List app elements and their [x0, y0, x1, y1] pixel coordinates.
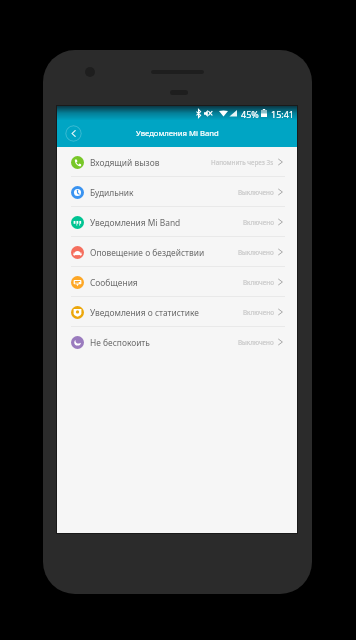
staticText: Включено [243, 278, 274, 287]
staticText: Напомнить через 3s [211, 158, 274, 167]
staticText: Не беспокоить [90, 337, 150, 348]
staticText: Оповещение о бездействии [90, 247, 205, 258]
staticText: Входящий вызов [90, 157, 160, 168]
staticText: Выключено [238, 338, 274, 347]
staticText: Выключено [238, 248, 274, 257]
staticText: Уведомления Mi Band [136, 128, 219, 138]
button[interactable]: Сообщения [57, 267, 297, 297]
button[interactable]: Уведомления Mi Band [57, 207, 297, 237]
staticText: Сообщения [90, 277, 138, 288]
button[interactable]: Оповещение о бездействии [57, 237, 297, 267]
button[interactable]: Не беспокоить [57, 327, 297, 357]
staticText: Включено [243, 308, 274, 317]
staticText: Будильник [90, 187, 134, 198]
staticText: Уведомления о статистике [90, 307, 199, 318]
button[interactable]: Back [65, 125, 82, 142]
button[interactable]: Уведомления о статистике [57, 297, 297, 327]
staticText: 45% [241, 108, 259, 120]
button[interactable]: Будильник [57, 177, 297, 207]
button[interactable]: Входящий вызов [57, 147, 297, 177]
staticText: Включено [243, 218, 274, 227]
staticText: Выключено [238, 188, 274, 197]
staticText: Уведомления Mi Band [90, 217, 181, 228]
staticText: 15:41 [271, 108, 295, 120]
